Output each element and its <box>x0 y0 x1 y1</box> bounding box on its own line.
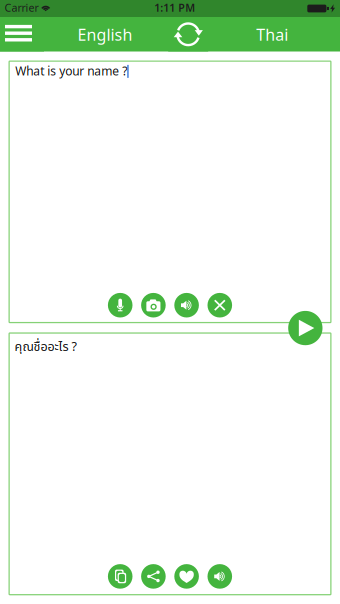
staticText: คุณชื่ออะไร ? <box>15 338 77 356</box>
staticText: Thai <box>256 24 288 45</box>
staticText: Carrier <box>5 1 39 15</box>
button[interactable]: Clear <box>207 293 232 317</box>
staticText: English <box>77 24 132 45</box>
button[interactable]: Thai <box>224 17 320 51</box>
button[interactable]: Speak <box>207 564 232 589</box>
button[interactable]: Camera input <box>141 293 166 317</box>
button[interactable]: Voice input <box>108 293 132 317</box>
button[interactable]: Share <box>141 564 166 589</box>
staticText: What is your name ? <box>15 63 127 79</box>
button[interactable]: Copy <box>108 564 132 589</box>
button[interactable]: Favourite <box>174 564 199 589</box>
button[interactable]: Swap languages <box>168 17 208 51</box>
button[interactable]: English <box>57 17 153 51</box>
button[interactable]: Menu <box>0 17 44 51</box>
button[interactable]: Speak <box>174 293 199 317</box>
button[interactable]: Translate <box>288 311 322 345</box>
staticText: 1:11 PM <box>154 1 195 15</box>
